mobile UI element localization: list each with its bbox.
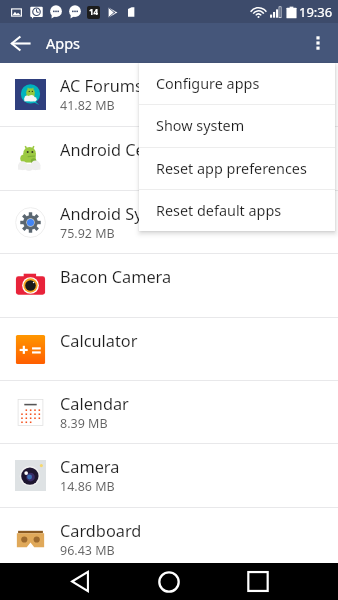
button[interactable]: Android Central [0, 127, 338, 190]
button[interactable]: Home [147, 563, 191, 600]
button[interactable]: Calendar [0, 381, 338, 443]
staticText: Reset default apps [156, 201, 282, 221]
staticText: AC Forums [60, 75, 143, 97]
staticText: Reset app preferences [156, 159, 307, 179]
staticText: 96.43 MB [60, 542, 115, 559]
staticText: Show system [156, 116, 245, 136]
button[interactable]: Back [58, 563, 102, 600]
staticText: Bacon Camera [60, 266, 172, 288]
button[interactable]: Calculator [0, 318, 338, 380]
staticText: 14 [89, 6, 99, 17]
button[interactable]: Back [0, 23, 41, 63]
button[interactable]: AC Forums [0, 63, 338, 126]
button[interactable]: More options [298, 23, 338, 63]
staticText: Android System [60, 203, 181, 225]
staticText: 8.39 MB [60, 415, 108, 432]
staticText: 75.92 MB [60, 225, 115, 242]
staticText: Calendar [60, 393, 129, 415]
staticText: Apps [46, 33, 81, 53]
button[interactable]: Bacon Camera [0, 254, 338, 317]
button[interactable]: Cardboard [0, 508, 338, 571]
staticText: TUE [88, 17, 99, 19]
staticText: Android Central [60, 139, 181, 161]
button[interactable]: Reset default apps [139, 190, 335, 231]
staticText: 14.86 MB [60, 478, 115, 495]
staticText: 41.82 MB [60, 97, 115, 114]
button[interactable]: Recents [236, 563, 280, 600]
button[interactable]: Android System [0, 191, 338, 253]
staticText: Cardboard [60, 520, 142, 542]
staticText: 19:36 [299, 3, 333, 21]
staticText: Configure apps [156, 74, 260, 94]
button[interactable]: Reset app preferences [139, 148, 335, 189]
staticText: Calculator [60, 330, 138, 352]
staticText: Camera [60, 456, 120, 478]
button[interactable]: Camera [0, 444, 338, 507]
button[interactable]: Show system [139, 105, 335, 147]
button[interactable]: Configure apps [139, 63, 335, 104]
